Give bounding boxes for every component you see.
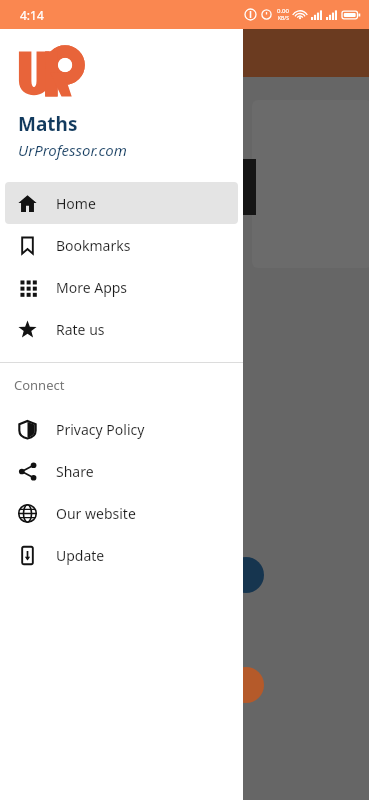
button[interactable]: Home (5, 182, 238, 224)
button[interactable]: More Apps (5, 266, 238, 308)
other: UrProfessor logo (17, 49, 81, 99)
staticText: Home (56, 194, 96, 213)
staticText: Privacy Policy (56, 420, 145, 439)
staticText: Update (56, 546, 105, 565)
button[interactable]: Rate us (5, 308, 238, 350)
staticText: 4:14 (20, 7, 44, 23)
staticText: Maths (18, 111, 78, 137)
staticText: More Apps (56, 278, 128, 297)
staticText: Bookmarks (56, 236, 131, 255)
staticText: Connect (14, 376, 65, 394)
button[interactable]: Privacy Policy (5, 408, 238, 450)
staticText: KB/S (278, 15, 289, 22)
staticText: Rate us (56, 320, 105, 339)
staticText: 0.00 (277, 7, 289, 15)
staticText: UrProfessor.com (18, 140, 127, 160)
button[interactable]: Update (5, 534, 238, 576)
staticText: Share (56, 462, 94, 481)
button[interactable]: Share (5, 450, 238, 492)
button[interactable]: Bookmarks (5, 224, 238, 266)
staticText: Our website (56, 504, 136, 523)
button[interactable]: Our website (5, 492, 238, 534)
